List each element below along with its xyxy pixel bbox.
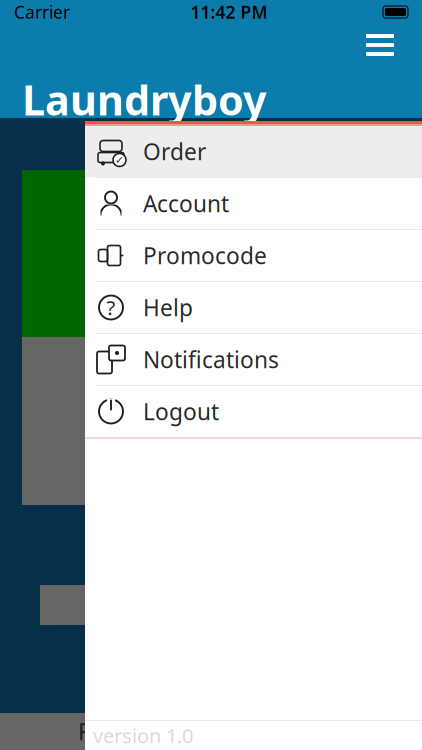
staticText: F xyxy=(78,716,90,746)
staticText: Notifications xyxy=(143,344,279,374)
staticText: Account xyxy=(143,188,229,218)
button[interactable]: Menu xyxy=(356,24,404,66)
staticText: version 1.0 xyxy=(93,722,193,749)
button[interactable]: Notifications xyxy=(85,334,422,385)
staticText: ? xyxy=(106,294,115,321)
staticText: Order xyxy=(143,136,206,166)
button[interactable]: ✓ xyxy=(85,126,422,177)
staticText: 11:42 PM xyxy=(190,0,267,23)
staticText: Carrier xyxy=(14,0,70,23)
button[interactable]: Logout xyxy=(85,386,422,437)
staticText: Promocode xyxy=(143,240,267,270)
button[interactable]: Account xyxy=(85,178,422,229)
staticText: Help xyxy=(143,292,193,322)
staticText: Laundryboy xyxy=(22,72,267,127)
staticText: Logout xyxy=(143,396,219,426)
button[interactable]: Promocode xyxy=(85,230,422,281)
button[interactable]: ? xyxy=(85,282,422,333)
staticText: ✓ xyxy=(115,154,124,166)
